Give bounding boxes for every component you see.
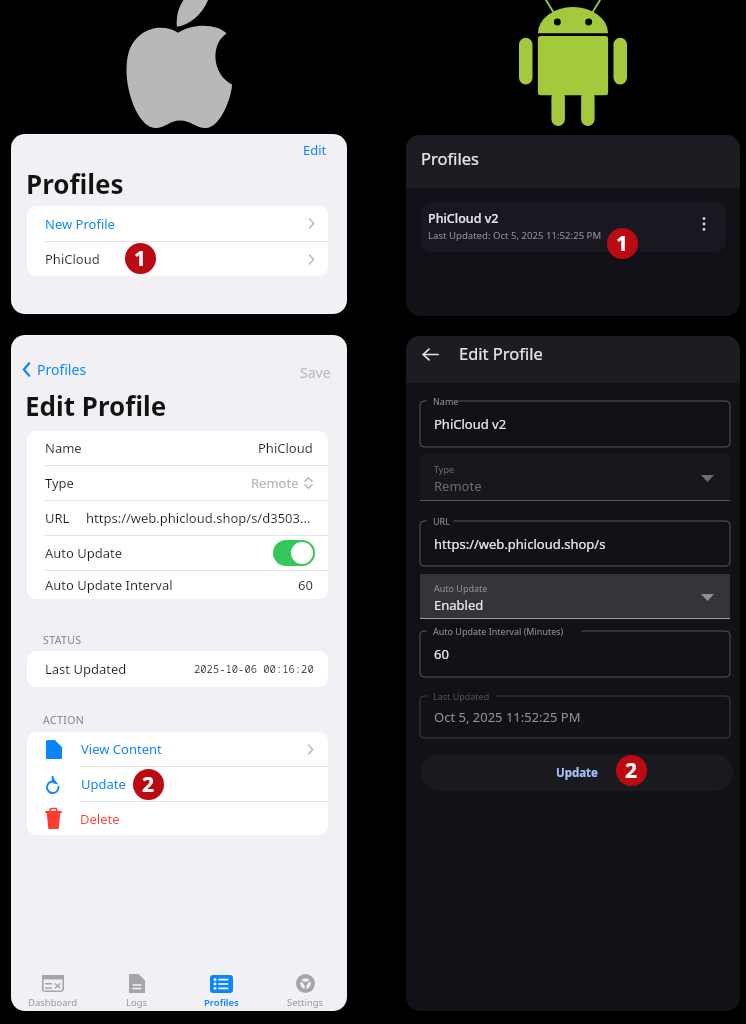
staticText: Profiles <box>421 147 479 169</box>
staticText: Update <box>81 775 126 793</box>
staticText: 60 <box>298 576 313 594</box>
staticText: Auto Update Interval <box>45 576 173 594</box>
button[interactable]: New Profile <box>27 206 328 241</box>
button[interactable]: Settings <box>263 967 347 1011</box>
staticText: Type <box>45 474 74 492</box>
staticText: Profiles <box>37 360 87 379</box>
button[interactable]: Auto Update <box>27 536 328 570</box>
button[interactable]: More options <box>696 215 712 233</box>
button[interactable]: PhiCloud <box>27 242 328 276</box>
staticText: Auto Update Interval (Minutes) <box>433 625 564 637</box>
staticText: Last Updated <box>433 690 490 702</box>
button[interactable]: Type <box>420 455 730 501</box>
staticText: Edit <box>303 141 327 159</box>
staticText: Auto Update <box>434 582 488 594</box>
staticText: PhiCloud v2 <box>428 210 499 227</box>
staticText: Last Updated: Oct 5, 2025 11:52:25 PM <box>428 229 602 242</box>
button[interactable]: Logs <box>95 967 179 1011</box>
button[interactable]: Name <box>27 431 328 465</box>
staticText: PhiCloud <box>258 439 313 457</box>
staticText: New Profile <box>45 215 115 233</box>
button[interactable]: View Content <box>27 732 328 766</box>
staticText: Remote <box>251 474 299 492</box>
staticText: Oct 5, 2025 11:52:25 PM <box>434 708 581 726</box>
staticText: Last Updated <box>45 660 127 678</box>
staticText: Auto Update <box>45 544 123 562</box>
button[interactable]: Type <box>27 466 328 500</box>
staticText: ACTION <box>43 713 85 727</box>
button[interactable]: Update <box>27 767 328 801</box>
staticText: Enabled <box>434 596 484 614</box>
staticText: https://web.phicloud.shop/s <box>434 535 606 553</box>
button[interactable]: Auto Update Interval <box>27 571 328 599</box>
staticText: URL <box>433 515 450 527</box>
staticText: Edit Profile <box>459 342 543 364</box>
staticText: Dashboard <box>28 996 78 1009</box>
button[interactable]: PhiCloud v2 <box>421 202 726 252</box>
staticText: URL <box>45 509 70 527</box>
button[interactable]: Last Updated <box>27 651 328 687</box>
button[interactable]: Delete <box>27 802 328 835</box>
staticText: Remote <box>434 477 482 495</box>
staticText: Profiles <box>26 166 124 201</box>
staticText: 2 <box>625 756 638 785</box>
staticText: 2025-10-06 00:16:20 <box>194 662 314 676</box>
staticText: View Content <box>81 740 162 758</box>
button[interactable]: Auto Update <box>420 574 730 619</box>
staticText: Settings <box>287 996 324 1009</box>
button[interactable]: Back <box>421 345 440 364</box>
button[interactable]: Name <box>420 401 730 447</box>
staticText: 1 <box>616 229 629 258</box>
button[interactable]: Profiles <box>22 360 87 379</box>
button[interactable]: Last Updated <box>420 696 730 738</box>
button[interactable]: URL <box>420 521 730 566</box>
button[interactable] <box>273 540 315 566</box>
staticText: Save <box>300 363 331 382</box>
staticText: 2 <box>142 770 155 799</box>
button[interactable]: Edit <box>303 141 327 159</box>
button[interactable]: Dashboard <box>11 967 95 1011</box>
staticText: PhiCloud v2 <box>434 415 507 433</box>
staticText: Name <box>433 395 459 407</box>
button[interactable]: Profiles <box>179 967 263 1011</box>
staticText: Profiles <box>204 996 239 1009</box>
button[interactable]: Update <box>421 754 733 791</box>
staticText: Name <box>45 439 82 457</box>
button[interactable]: Auto Update Interval (Minutes) <box>420 631 730 677</box>
staticText: Type <box>434 463 455 475</box>
staticText: STATUS <box>43 633 82 647</box>
staticText: 1 <box>134 244 147 273</box>
staticText: https://web.phicloud.shop/s/d3503… <box>86 509 311 527</box>
button[interactable]: Save <box>300 363 331 382</box>
staticText: Edit Profile <box>25 388 167 423</box>
staticText: PhiCloud <box>45 250 100 268</box>
staticText: 60 <box>434 645 449 663</box>
staticText: Delete <box>80 810 120 828</box>
button[interactable]: URL <box>27 501 328 535</box>
staticText: Logs <box>126 996 148 1009</box>
staticText: Update <box>556 765 598 781</box>
